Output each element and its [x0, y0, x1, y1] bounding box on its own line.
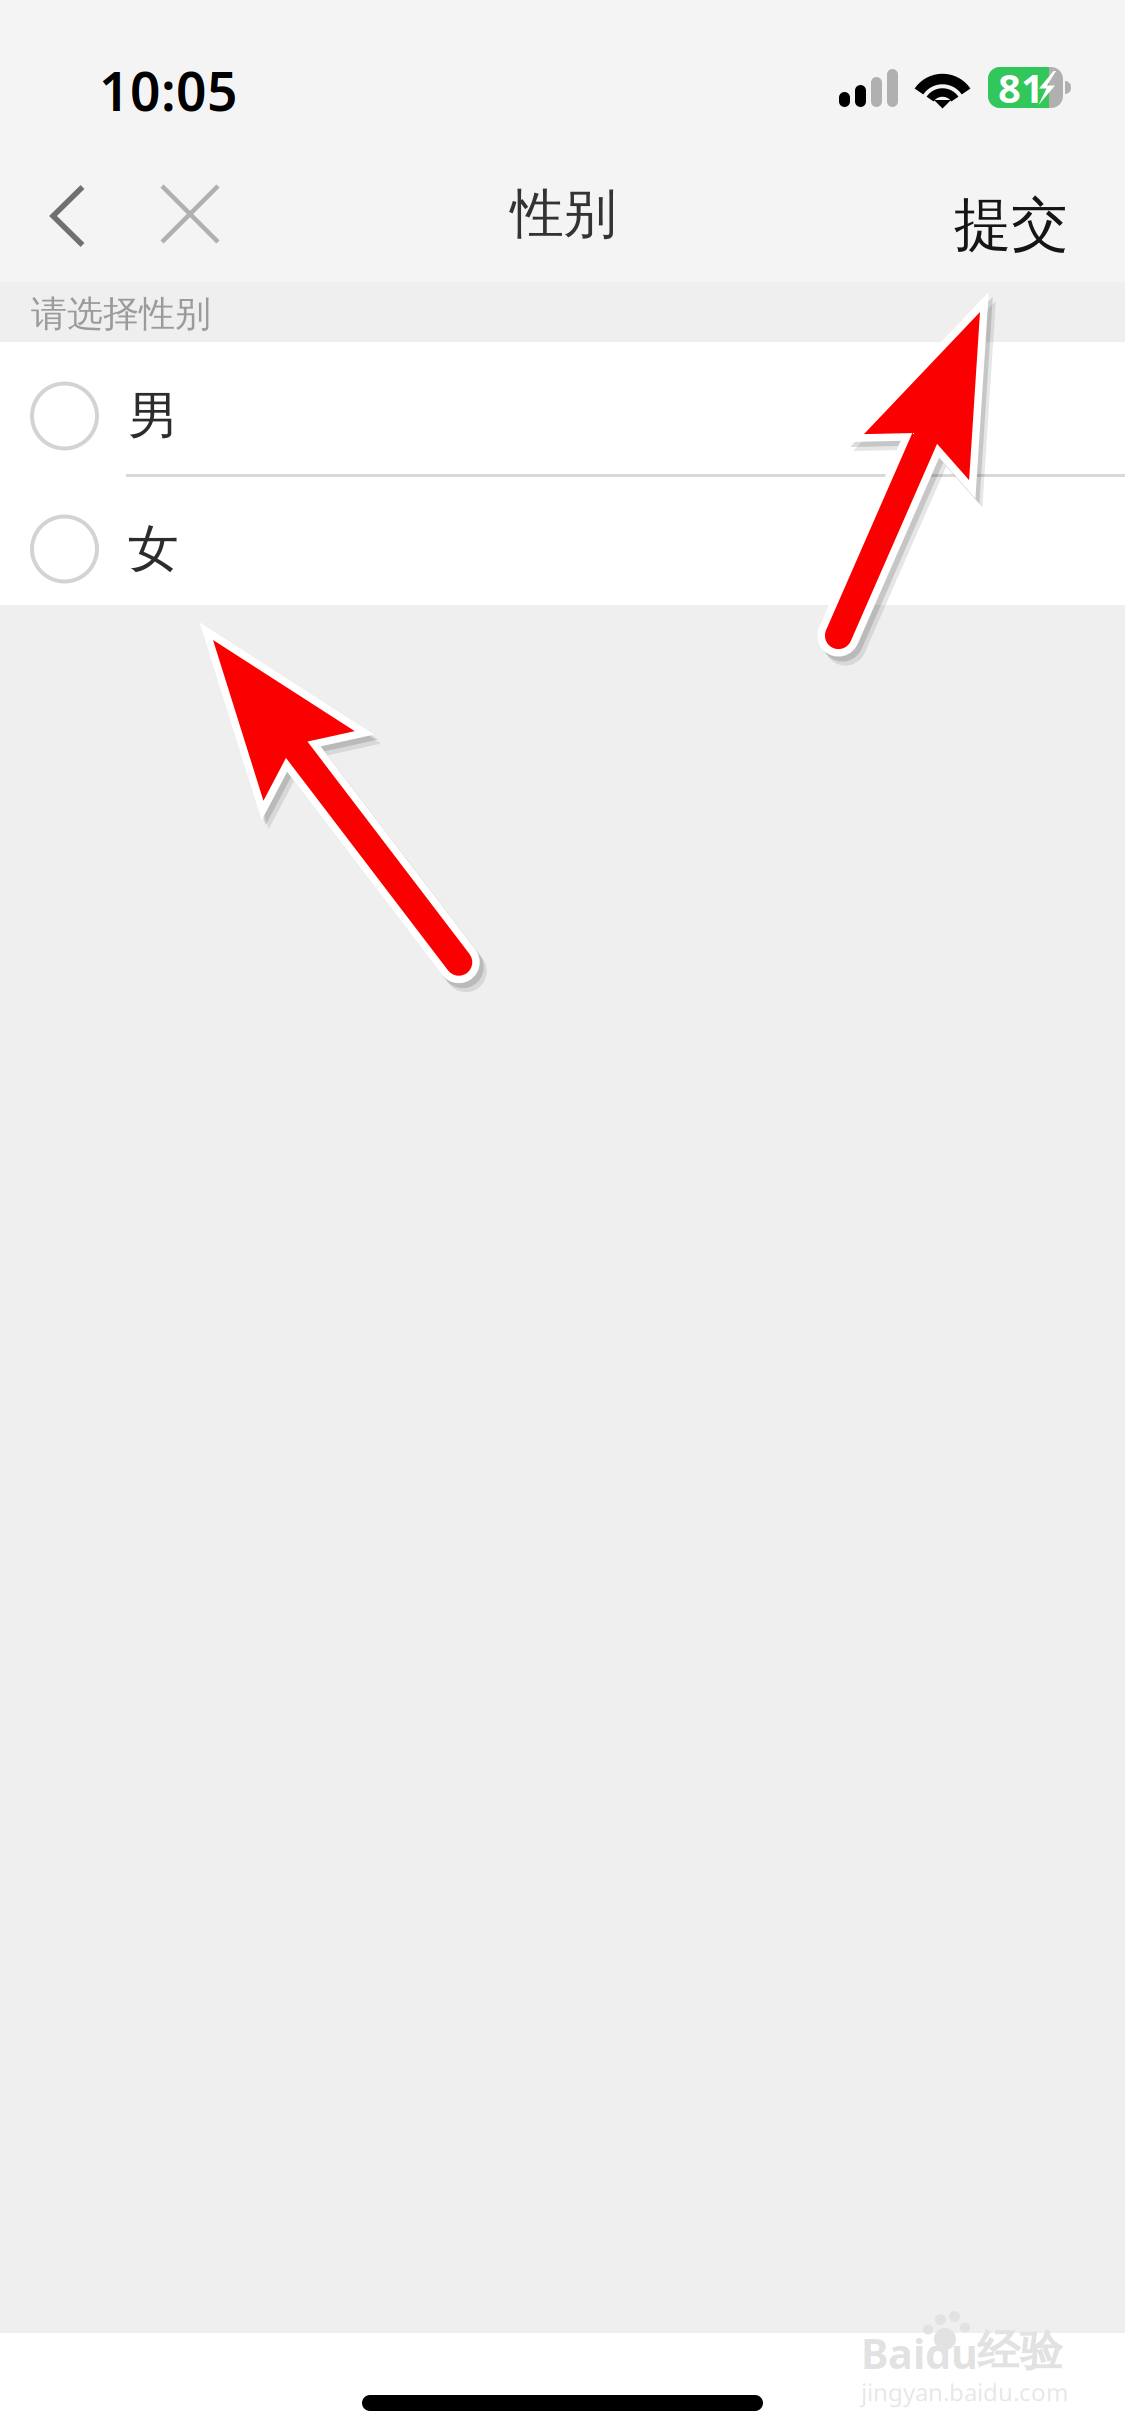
- staticText: 经验: [977, 2325, 1063, 2377]
- staticText: 81: [998, 61, 1044, 114]
- staticText: 性别: [510, 181, 616, 247]
- button[interactable]: Back: [0, 132, 106, 282]
- staticText: 10:05: [99, 55, 238, 126]
- button[interactable]: 男: [0, 342, 1125, 477]
- button[interactable]: 女: [0, 477, 1125, 605]
- staticText: jingyan.baidu.com: [861, 2376, 1068, 2408]
- staticText: 提交: [954, 190, 1068, 260]
- staticText: Baidu: [861, 2326, 978, 2380]
- button[interactable]: Close: [136, 132, 244, 282]
- staticText: 男: [128, 385, 179, 447]
- staticText: 女: [128, 518, 179, 580]
- button[interactable]: 提交: [920, 132, 1094, 282]
- staticText: 请选择性别: [31, 292, 211, 336]
